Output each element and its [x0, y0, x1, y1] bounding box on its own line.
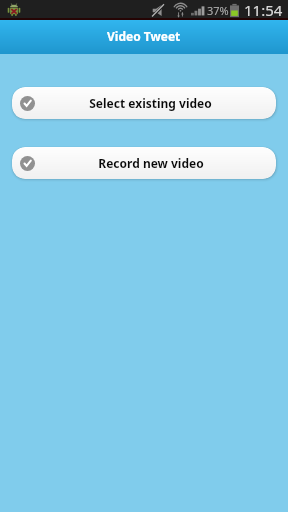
button[interactable]: Select existing video: [12, 87, 276, 119]
staticText: Select existing video: [89, 95, 212, 111]
other: Android notification: [7, 3, 21, 17]
staticText: Record new video: [98, 155, 204, 171]
staticText: 11:54: [244, 0, 283, 20]
other: Silent mode: [152, 4, 164, 17]
button[interactable]: Record new video: [12, 147, 276, 179]
other: Battery 37 percent: [230, 3, 239, 18]
staticText: 37%: [207, 3, 229, 18]
other: Wi-Fi: [173, 3, 188, 18]
staticText: Video Tweet: [107, 28, 181, 44]
other: Mobile signal: [191, 4, 206, 17]
